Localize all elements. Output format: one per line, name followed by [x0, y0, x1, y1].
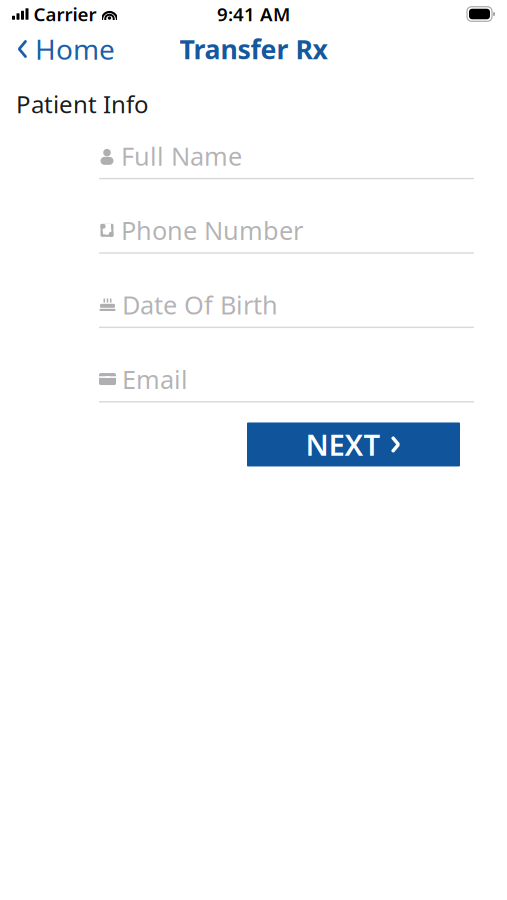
staticText: Date Of Birth [122, 288, 278, 321]
button[interactable]: Back to Home [0, 24, 115, 74]
staticText: Patient Info [16, 88, 149, 120]
staticText: Carrier [33, 2, 96, 26]
staticText: Transfer Rx [179, 31, 327, 67]
staticText: Email [122, 362, 188, 396]
button[interactable]: NEXT [247, 422, 460, 466]
button[interactable]: Full Name [99, 134, 474, 179]
button[interactable]: Phone Number [99, 208, 474, 254]
staticText: NEXT [305, 425, 380, 464]
staticText: Home [35, 30, 115, 68]
button[interactable]: Date Of Birth [99, 283, 474, 328]
staticText: 9:41 AM [217, 2, 290, 26]
staticText: Full Name [121, 139, 242, 173]
button[interactable]: Email [99, 357, 474, 402]
staticText: Phone Number [121, 213, 303, 247]
